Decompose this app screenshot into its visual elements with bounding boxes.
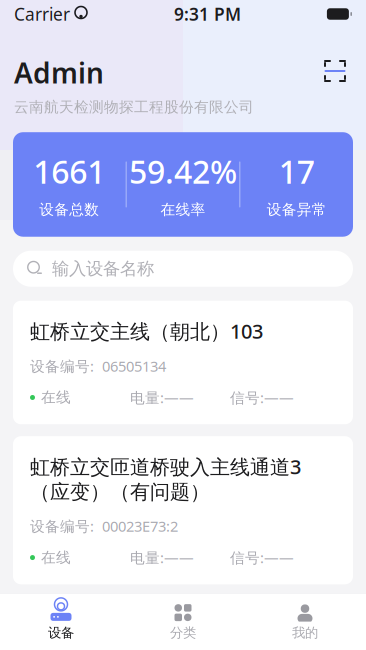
staticText: 设备总数 <box>39 201 99 219</box>
button[interactable]: 分类 <box>122 599 244 646</box>
button[interactable]: 输入设备名称 <box>13 251 353 287</box>
staticText: 设备编号: 06505134 <box>30 356 166 376</box>
staticText: Admin <box>14 54 104 91</box>
staticText: 设备 <box>48 625 74 641</box>
staticText: 在线 <box>41 388 71 406</box>
staticText: 1661 <box>33 150 105 193</box>
staticText: 虹桥立交匝道桥驶入主线通道3（应变）（有问题） <box>30 453 301 504</box>
staticText: 9:31 PM <box>174 2 241 25</box>
staticText: 设备编号: 00023E73:2 <box>30 516 178 536</box>
staticText: 云南航天检测物探工程股份有限公司 <box>14 98 254 116</box>
staticText: 17 <box>279 150 315 193</box>
staticText: 输入设备名称 <box>52 258 154 279</box>
button[interactable]: 设备 <box>0 599 122 646</box>
staticText: 在线率 <box>160 201 205 219</box>
staticText: 59.42% <box>129 150 237 193</box>
button[interactable]: 虹桥立交匝道桥驶入主线通道3（应变）（有问题） <box>13 436 353 584</box>
staticText: 设备异常 <box>267 201 327 219</box>
button[interactable]: 我的 <box>244 599 366 646</box>
staticText: Carrier <box>14 2 70 25</box>
staticText: 信号:—— <box>230 388 294 407</box>
button[interactable]: 虹桥立交主线（朝北）103 <box>13 301 353 424</box>
button[interactable]: 果林_雨量 <box>13 596 353 650</box>
staticText: 我的 <box>292 625 318 641</box>
staticText: 在线 <box>41 549 71 567</box>
staticText: 分类 <box>170 625 196 641</box>
staticText: 虹桥立交主线（朝北）103 <box>30 318 263 344</box>
button[interactable]: 扫一扫 <box>318 54 352 88</box>
staticText: 电量:—— <box>130 388 194 407</box>
staticText: 信号:—— <box>230 548 294 567</box>
staticText: 电量:—— <box>130 548 194 567</box>
staticText: 果林_雨量 <box>30 613 119 640</box>
